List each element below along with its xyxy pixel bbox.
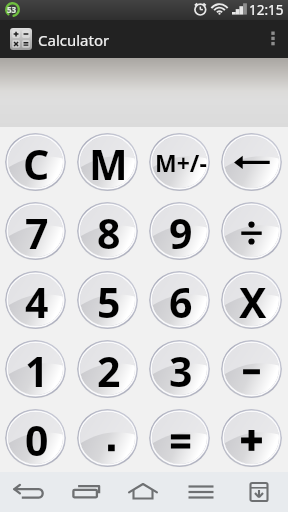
button[interactable]: 0: [5, 409, 66, 467]
staticText: 53: [7, 4, 17, 15]
staticText: 2: [97, 343, 121, 398]
staticText: 1: [25, 343, 49, 398]
button[interactable]: Menu: [172, 472, 230, 512]
button[interactable]: 7: [5, 202, 66, 260]
button[interactable]: 4: [5, 271, 66, 329]
staticText: 4: [25, 274, 49, 329]
button[interactable]: plus: [221, 409, 282, 467]
button[interactable]: X: [221, 271, 282, 329]
staticText: 9: [169, 205, 193, 260]
button[interactable]: Back: [0, 472, 57, 512]
staticText: 3: [169, 343, 193, 398]
staticText: M+/-: [155, 147, 207, 178]
button[interactable]: eq: [149, 409, 210, 467]
button[interactable]: 6: [149, 271, 210, 329]
button[interactable]: 8: [77, 202, 138, 260]
button[interactable]: 2: [77, 340, 138, 398]
staticText: 6: [169, 274, 193, 329]
button[interactable]: 1: [5, 340, 66, 398]
button[interactable]: Hide keyboard: [230, 472, 288, 512]
staticText: M: [89, 136, 128, 191]
button[interactable]: C: [5, 133, 66, 191]
button[interactable]: 5: [77, 271, 138, 329]
staticText: C: [23, 136, 50, 191]
button[interactable]: 3: [149, 340, 210, 398]
staticText: 5: [97, 274, 121, 329]
button[interactable]: M: [77, 133, 138, 191]
staticText: X: [239, 274, 267, 329]
button[interactable]: back: [221, 133, 282, 191]
button[interactable]: dot: [77, 409, 138, 467]
staticText: 7: [25, 205, 49, 260]
staticText: Calculator: [38, 30, 110, 50]
button[interactable]: div: [221, 202, 282, 260]
button[interactable]: 9: [149, 202, 210, 260]
button[interactable]: Home: [114, 472, 172, 512]
button[interactable]: minus: [221, 340, 282, 398]
staticText: 12:15: [249, 1, 284, 19]
staticText: 0: [25, 412, 49, 467]
button[interactable]: More options: [258, 20, 288, 58]
button[interactable]: M+/-: [149, 133, 210, 191]
staticText: 8: [97, 205, 121, 260]
button[interactable]: Recents: [57, 472, 114, 512]
